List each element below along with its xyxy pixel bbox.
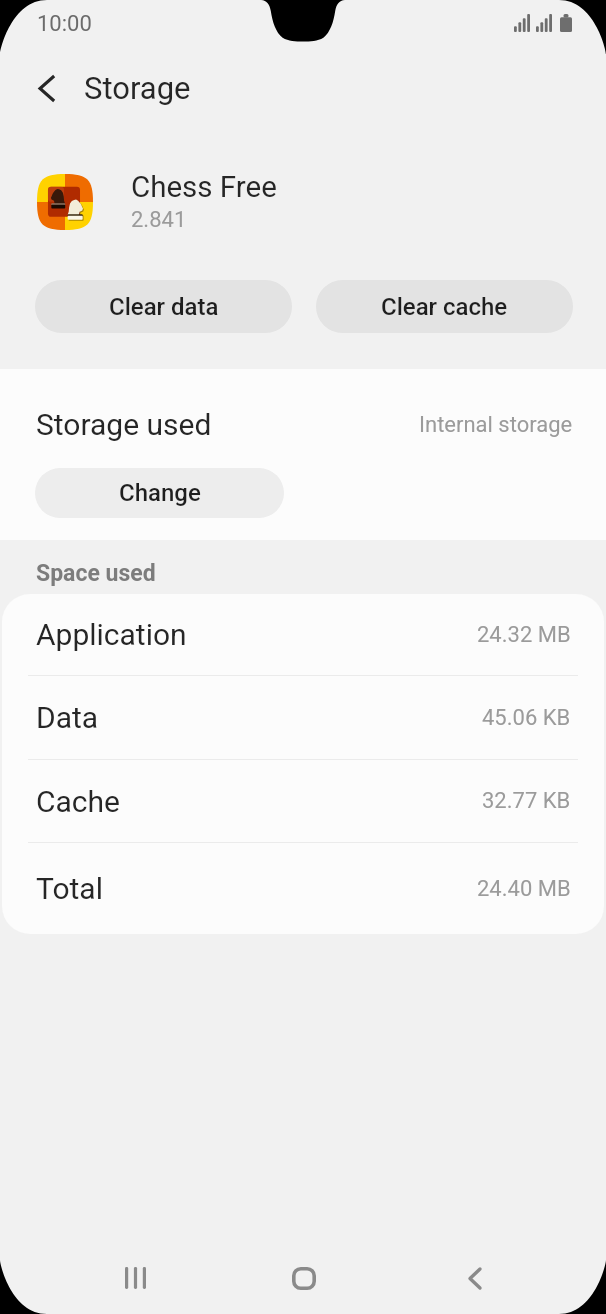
button[interactable]: Total bbox=[2, 843, 604, 934]
button[interactable]: Data bbox=[2, 676, 604, 760]
staticText: 32.77 KB bbox=[482, 788, 571, 814]
staticText: Change bbox=[119, 479, 201, 507]
button[interactable]: Application bbox=[2, 594, 604, 676]
staticText: Storage used bbox=[36, 407, 212, 442]
staticText: 24.32 MB bbox=[477, 622, 571, 648]
staticText: 45.06 KB bbox=[482, 705, 571, 731]
staticText: Total bbox=[36, 871, 103, 906]
staticText: Cache bbox=[36, 784, 120, 819]
button[interactable]: Recent apps bbox=[100, 1243, 170, 1313]
staticText: 24.40 MB bbox=[477, 876, 571, 902]
staticText: Clear cache bbox=[381, 293, 508, 321]
button[interactable]: Back bbox=[440, 1243, 510, 1313]
button[interactable]: Home bbox=[269, 1243, 339, 1313]
staticText: Chess Free bbox=[131, 170, 277, 205]
button[interactable]: Cache bbox=[2, 760, 604, 843]
staticText: 10:00 bbox=[37, 11, 92, 37]
button[interactable]: Clear cache bbox=[316, 280, 573, 333]
staticText: Space used bbox=[36, 560, 156, 587]
staticText: Internal storage bbox=[419, 412, 573, 438]
staticText: Storage bbox=[84, 70, 191, 106]
button[interactable]: Change bbox=[35, 468, 284, 518]
staticText: Clear data bbox=[109, 293, 219, 321]
button[interactable]: Clear data bbox=[35, 280, 292, 333]
staticText: Data bbox=[36, 700, 99, 735]
button[interactable]: Back bbox=[18, 60, 74, 116]
staticText: 2.841 bbox=[131, 207, 187, 233]
staticText: Application bbox=[36, 617, 187, 652]
